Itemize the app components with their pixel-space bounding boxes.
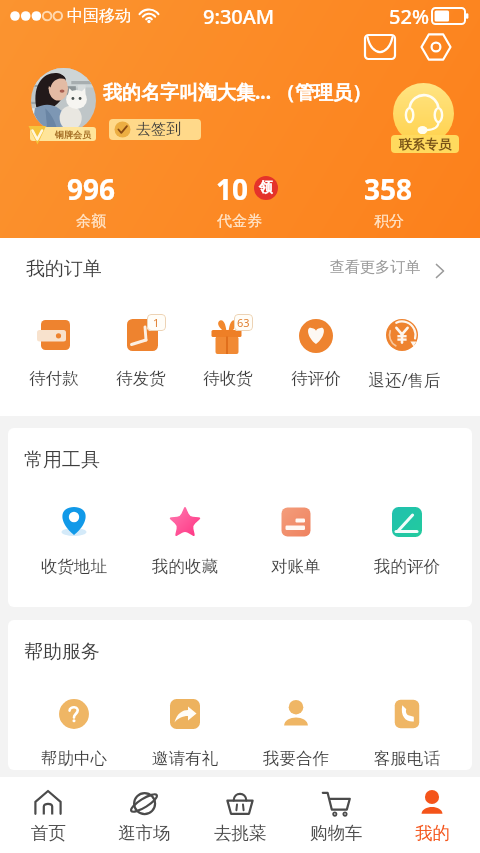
staticText: 去挑菜 <box>214 822 267 844</box>
staticText: 63 <box>237 315 250 330</box>
staticText: 待付款 <box>29 368 79 389</box>
staticText: 9:30AM <box>203 3 275 30</box>
staticText: 首页 <box>31 822 66 844</box>
button[interactable]: 客服电话 <box>351 694 462 769</box>
staticText: 10 <box>216 170 249 208</box>
staticText: 我的评价 <box>374 556 440 577</box>
staticText: 我的名字叫淘大集... （管理员） <box>103 79 371 105</box>
button[interactable]: 去签到 <box>109 119 201 140</box>
staticText: 待发货 <box>116 368 166 389</box>
staticText: 客服电话 <box>374 748 440 769</box>
button[interactable]: 对账单 <box>240 502 351 577</box>
button[interactable]: 358 <box>314 170 463 232</box>
button[interactable]: 去挑菜 <box>192 777 288 853</box>
button[interactable]: 10 <box>165 170 314 232</box>
staticText: 358 <box>364 170 413 208</box>
staticText: 代金券 <box>217 212 262 231</box>
staticText: 我的收藏 <box>152 556 218 577</box>
button[interactable]: 联系专员 <box>391 135 459 153</box>
button[interactable]: Messages <box>358 25 402 69</box>
staticText: 对账单 <box>271 556 321 577</box>
button[interactable]: 我要合作 <box>240 694 351 769</box>
staticText: 收货地址 <box>41 556 107 577</box>
button[interactable]: 63 <box>184 318 272 389</box>
staticText: 联系专员 <box>399 136 451 152</box>
staticText: 铜牌会员 <box>55 129 91 140</box>
staticText: 逛市场 <box>118 822 171 844</box>
staticText: 余额 <box>76 212 106 231</box>
staticText: 52% <box>389 3 429 30</box>
button[interactable]: 购物车 <box>288 777 384 853</box>
button[interactable]: 待付款 <box>10 318 97 389</box>
button[interactable]: 我的 <box>384 777 480 853</box>
button[interactable]: Avatar <box>31 68 96 133</box>
button[interactable]: 逛市场 <box>96 777 192 853</box>
button[interactable]: 我的评价 <box>351 502 462 577</box>
staticText: 查看更多订单 <box>330 258 420 277</box>
button[interactable]: 1 <box>97 318 184 389</box>
button[interactable]: 退还/售后 <box>360 318 448 391</box>
button[interactable]: Settings <box>414 25 458 69</box>
staticText: 1 <box>153 315 160 330</box>
button[interactable]: 我的收藏 <box>129 502 240 577</box>
button[interactable]: 收货地址 <box>18 502 129 577</box>
staticText: 常用工具 <box>24 448 100 472</box>
staticText: 我的 <box>415 822 450 844</box>
staticText: 邀请有礼 <box>152 748 218 769</box>
staticText: 购物车 <box>310 822 363 844</box>
staticText: 退还/售后 <box>368 368 441 391</box>
button[interactable]: Contact specialist <box>393 83 454 144</box>
staticText: 我要合作 <box>263 748 329 769</box>
button[interactable]: 帮助中心 <box>18 694 129 769</box>
staticText: 待评价 <box>291 368 341 389</box>
staticText: 中国移动 <box>67 6 131 26</box>
staticText: 积分 <box>374 212 404 231</box>
button[interactable]: 首页 <box>0 777 96 853</box>
staticText: 领 <box>259 179 273 197</box>
staticText: 去签到 <box>136 120 181 139</box>
staticText: 我的订单 <box>26 257 102 281</box>
staticText: 待收货 <box>203 368 253 389</box>
button[interactable]: 996 <box>17 170 165 232</box>
button[interactable]: 查看更多订单 <box>330 258 448 277</box>
staticText: 帮助中心 <box>41 748 107 769</box>
button[interactable]: 邀请有礼 <box>129 694 240 769</box>
staticText: 帮助服务 <box>24 640 100 664</box>
staticText: 996 <box>67 170 116 208</box>
button[interactable]: 待评价 <box>272 318 360 389</box>
